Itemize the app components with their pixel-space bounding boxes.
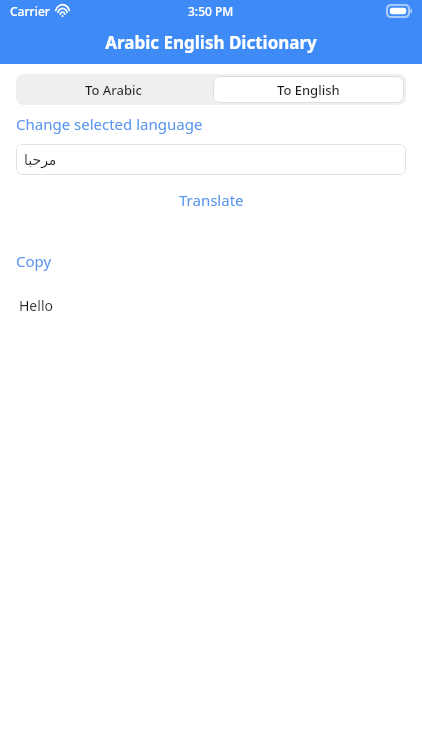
button[interactable]: Copy bbox=[16, 251, 52, 271]
staticText: Arabic English Dictionary bbox=[105, 31, 317, 54]
staticText: Translate bbox=[179, 190, 244, 210]
other: Battery full bbox=[387, 5, 412, 17]
other: Wi-Fi signal bbox=[55, 6, 70, 17]
staticText: To Arabic bbox=[85, 81, 142, 99]
staticText: Change selected language bbox=[16, 114, 203, 134]
button[interactable]: Translate bbox=[169, 188, 254, 212]
button[interactable]: To English bbox=[213, 76, 404, 103]
staticText: Carrier bbox=[10, 3, 50, 19]
staticText: مرحبا bbox=[24, 152, 57, 168]
button[interactable]: Change selected language bbox=[16, 114, 203, 134]
staticText: 3:50 PM bbox=[188, 3, 234, 19]
staticText: To English bbox=[277, 81, 340, 99]
staticText: Hello bbox=[19, 296, 53, 315]
button[interactable]: To Arabic bbox=[16, 74, 211, 105]
staticText: Copy bbox=[16, 251, 52, 271]
button[interactable]: مرحبا bbox=[16, 144, 406, 175]
